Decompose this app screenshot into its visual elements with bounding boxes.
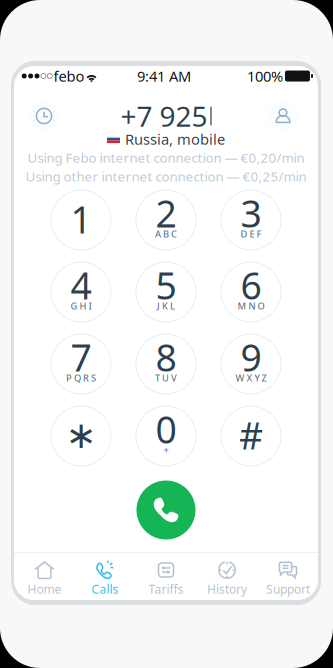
button[interactable]: History (197, 555, 257, 601)
staticText: 8 (155, 332, 176, 382)
staticText: GHI (70, 300, 91, 312)
staticText: PQRS (66, 372, 96, 384)
button[interactable]: Contacts (264, 97, 302, 135)
staticText: 5 (155, 260, 176, 310)
button[interactable]: Call (134, 478, 198, 542)
staticText: 3 (240, 188, 261, 238)
staticText: WXYZ (235, 372, 266, 384)
button[interactable]: 3 (215, 185, 287, 255)
staticText: 0 (155, 404, 176, 454)
staticText: MNO (237, 300, 264, 312)
button[interactable]: Calls (75, 555, 135, 601)
button[interactable]: ∗ (45, 401, 117, 471)
button[interactable]: 5 (130, 257, 202, 327)
staticText: 9 (240, 332, 261, 382)
button[interactable]: 9 (215, 329, 287, 399)
staticText: History (207, 581, 247, 597)
staticText: ∗ (65, 414, 96, 456)
staticText: TUV (155, 372, 177, 384)
staticText: DEF (240, 228, 261, 240)
button[interactable]: 0 (130, 401, 202, 471)
staticText: 100% (247, 66, 283, 86)
staticText: + (163, 444, 168, 456)
staticText: Support (266, 581, 310, 597)
staticText: Using other internet connection — €0,25/… (25, 167, 306, 185)
staticText: Russia, mobile (125, 129, 225, 149)
staticText: 6 (240, 260, 261, 310)
button[interactable]: 6 (215, 257, 287, 327)
staticText: 9:41 AM (137, 66, 191, 86)
button[interactable]: 1 (45, 185, 117, 255)
button[interactable]: 8 (130, 329, 202, 399)
staticText: febo (53, 66, 84, 86)
staticText: # (239, 410, 263, 460)
staticText: ABC (155, 228, 177, 240)
staticText: +7 925 (120, 97, 207, 135)
staticText: Home (27, 581, 61, 597)
staticText: JKL (157, 300, 175, 312)
button[interactable]: Recent calls (25, 97, 63, 135)
staticText: 1 (70, 194, 91, 244)
button[interactable]: # (215, 401, 287, 471)
staticText: 4 (70, 260, 91, 310)
staticText: Using Febo internet connection — €0,20/m… (27, 149, 304, 166)
staticText: 2 (155, 188, 176, 238)
button[interactable]: Support (258, 555, 318, 601)
button[interactable]: Home (14, 555, 74, 601)
button[interactable]: 4 (45, 257, 117, 327)
staticText: Tariffs (148, 581, 183, 597)
staticText: 7 (70, 332, 91, 382)
staticText: Calls (91, 581, 118, 597)
button[interactable]: 2 (130, 185, 202, 255)
button[interactable]: Tariffs (136, 555, 196, 601)
button[interactable]: 7 (45, 329, 117, 399)
